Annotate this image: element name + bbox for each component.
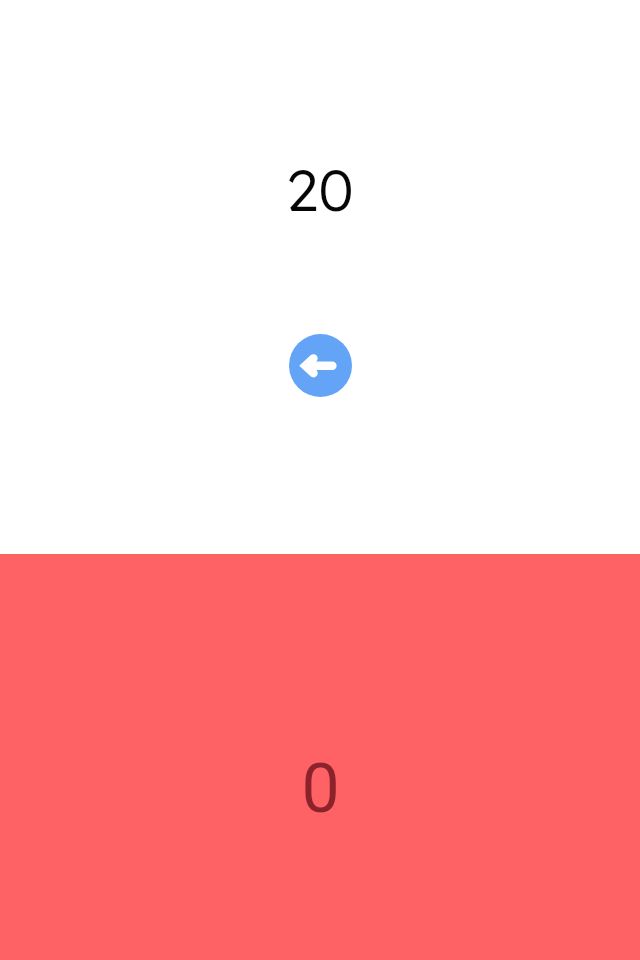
button[interactable]: 20 — [0, 0, 640, 554]
staticText: 20 — [286, 153, 354, 226]
button[interactable]: 0 — [0, 554, 640, 960]
button[interactable]: Undo last point — [289, 334, 352, 397]
staticText: 0 — [301, 749, 340, 829]
